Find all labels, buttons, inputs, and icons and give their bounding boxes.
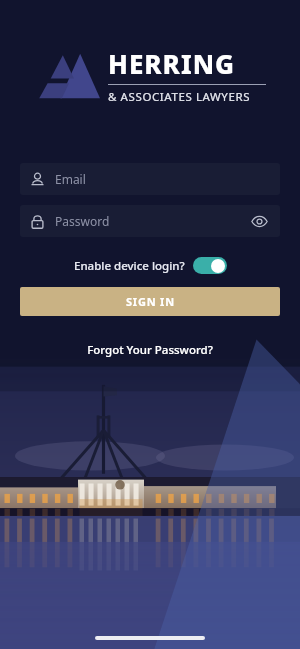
button[interactable]: Forgot Your Password?: [79, 338, 221, 362]
button[interactable]: Show password: [248, 210, 270, 232]
staticText: HERRING: [108, 46, 236, 81]
button[interactable]: Enable device login?: [70, 255, 231, 276]
staticText: Password: [55, 213, 110, 229]
button[interactable]: Password: [20, 205, 280, 237]
button[interactable]: SIGN IN: [20, 287, 280, 316]
staticText: Email: [55, 171, 86, 187]
staticText: Enable device login?: [74, 258, 185, 274]
staticText: Forgot Your Password?: [87, 342, 213, 358]
button[interactable]: Email: [20, 163, 280, 195]
staticText: SIGN IN: [126, 294, 175, 309]
staticText: & ASSOCIATES LAWYERS: [108, 89, 251, 105]
